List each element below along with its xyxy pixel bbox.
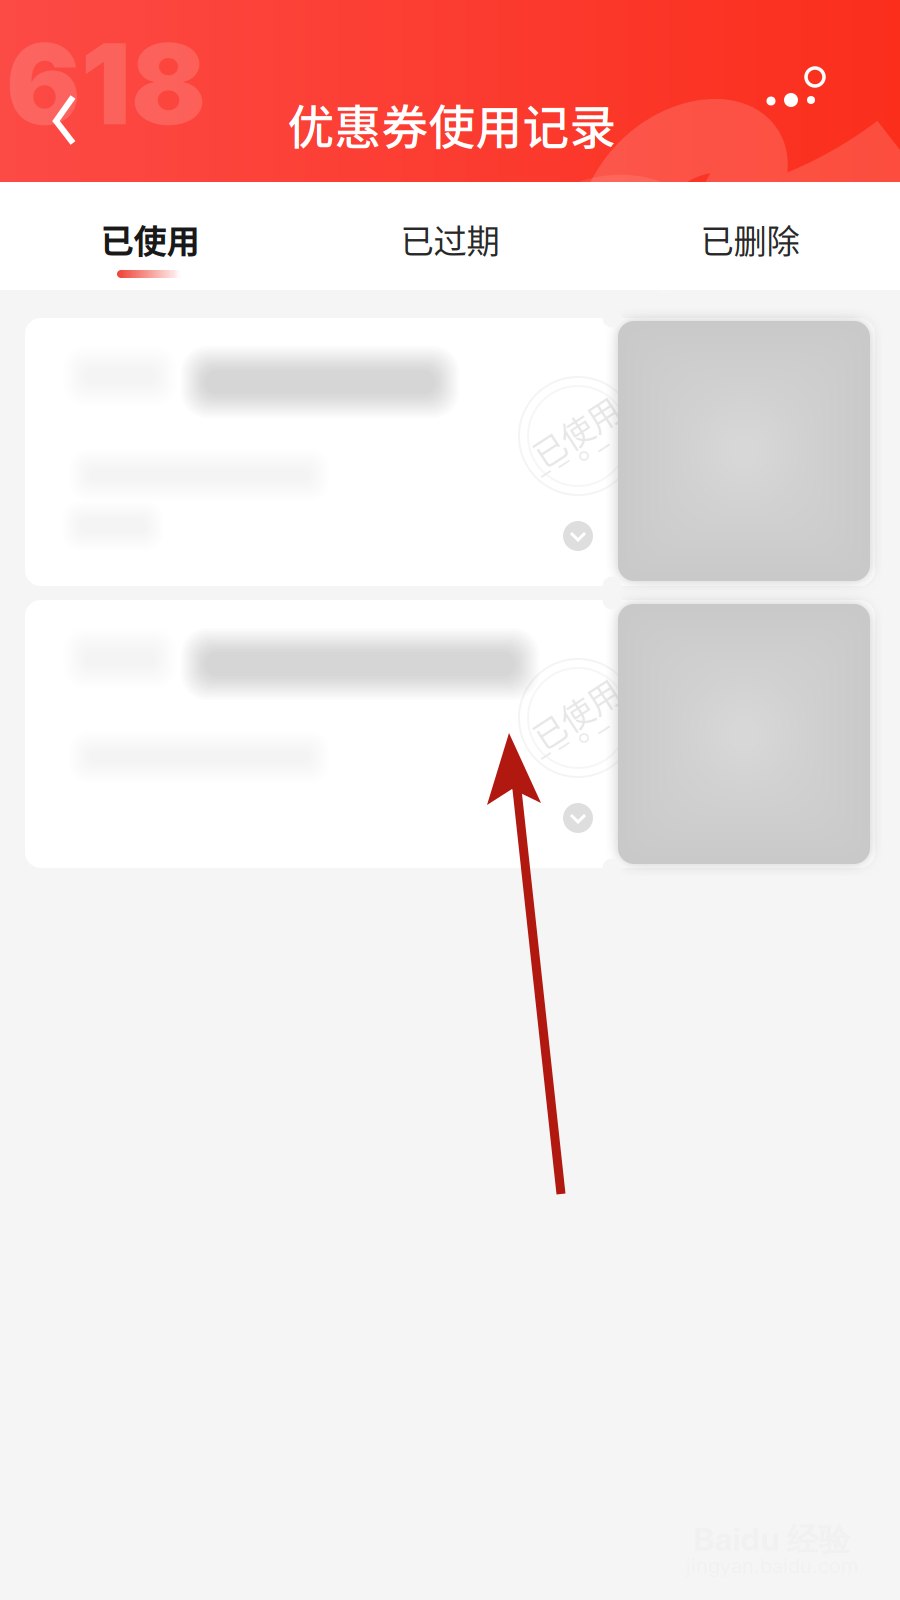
staticText: 已使用 <box>528 690 624 736</box>
staticText: 已删除 <box>700 215 799 263</box>
staticText: 已使用 <box>100 215 199 263</box>
button[interactable]: Back <box>0 65 104 175</box>
staticText: 已过期 <box>400 215 499 263</box>
button[interactable]: 已使用 <box>0 182 300 290</box>
button[interactable]: Expand details <box>546 504 610 568</box>
button[interactable]: More options <box>751 39 861 129</box>
staticText: 优惠券使用记录 <box>287 90 616 158</box>
button[interactable]: 已过期 <box>300 182 600 290</box>
button[interactable]: Expand details <box>546 786 610 850</box>
staticText: 618 <box>6 17 206 151</box>
staticText: 已使用 <box>528 408 624 454</box>
button[interactable]: 已删除 <box>600 182 900 290</box>
